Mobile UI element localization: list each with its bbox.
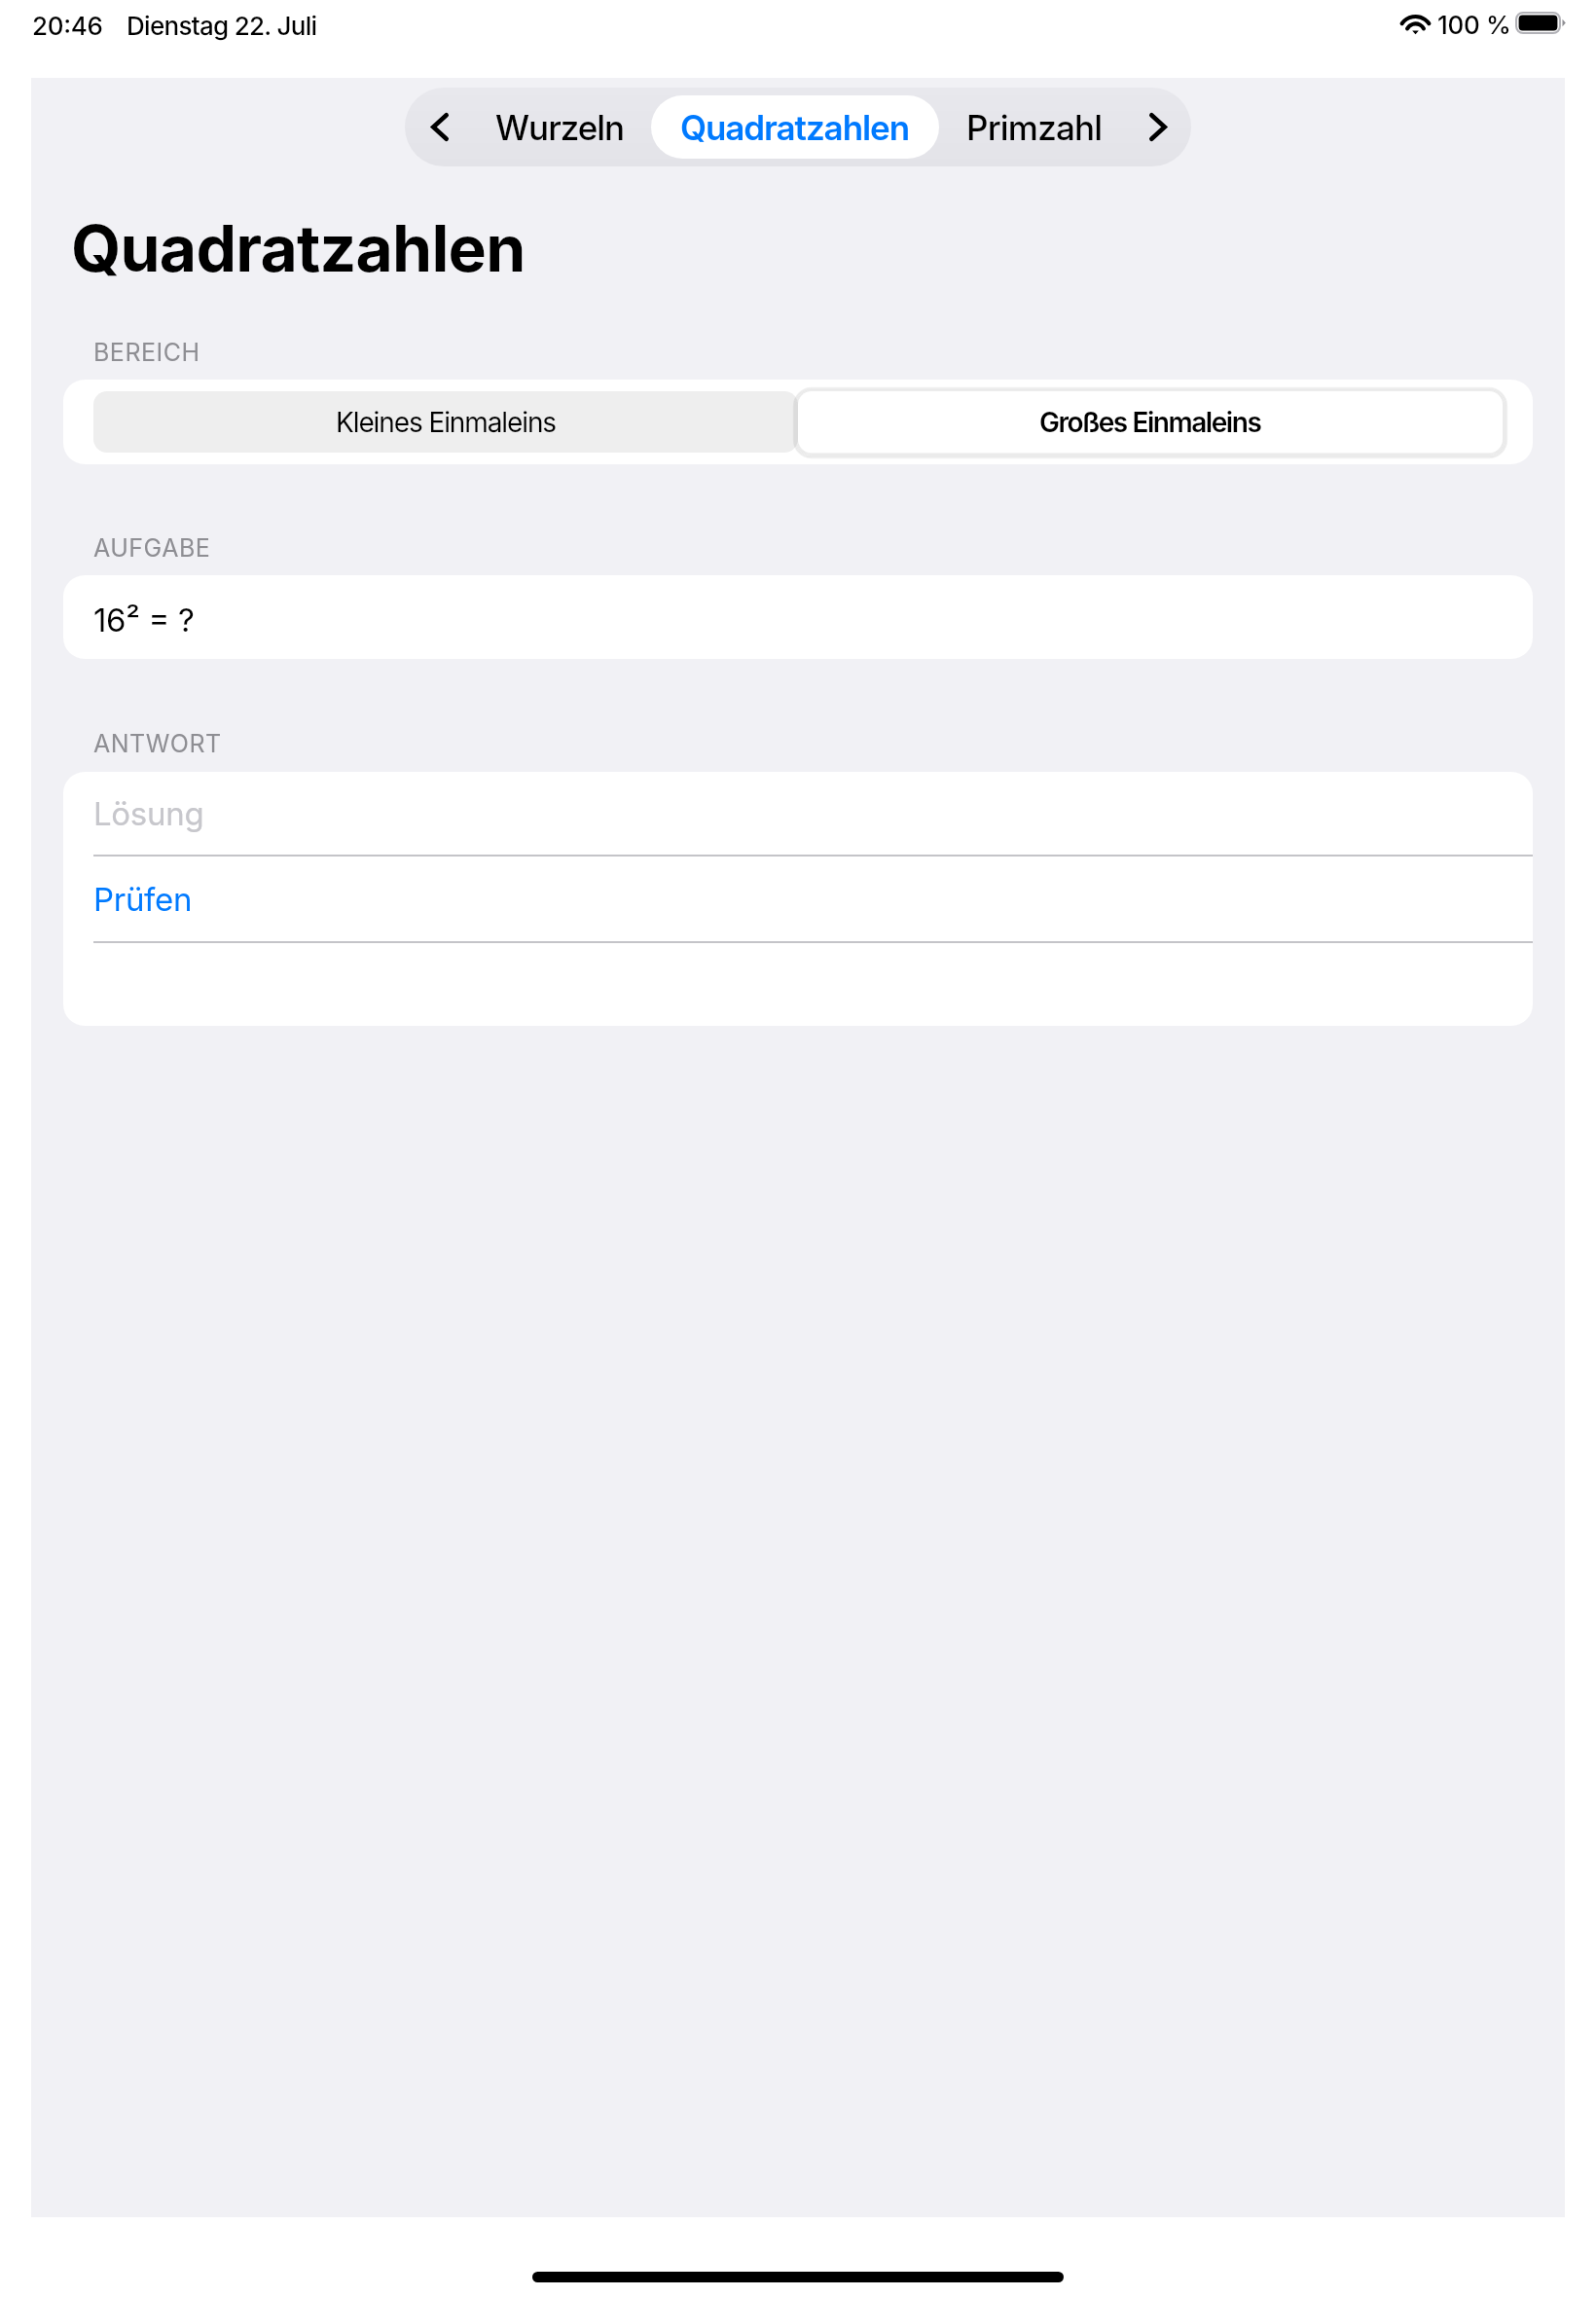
staticText: Großes Einmaleins bbox=[1039, 406, 1261, 439]
staticText: Wurzeln bbox=[495, 107, 625, 148]
staticText: AUFGABE bbox=[93, 533, 211, 563]
staticText: 100 % bbox=[1437, 10, 1511, 40]
button[interactable]: Quadratzahlen bbox=[651, 95, 939, 159]
button[interactable]: Wurzeln bbox=[482, 88, 637, 166]
staticText: BEREICH bbox=[93, 338, 200, 367]
staticText: Quadratzahlen bbox=[680, 107, 910, 148]
button[interactable]: Großes Einmaleins bbox=[798, 391, 1503, 453]
staticText: 16² = ? bbox=[93, 601, 195, 639]
button[interactable]: Prüfen bbox=[93, 857, 1533, 941]
staticText: Prüfen bbox=[93, 880, 193, 919]
staticText: Dienstag 22. Juli bbox=[127, 11, 317, 41]
button[interactable]: Primzahl bbox=[957, 88, 1112, 166]
staticText: Quadratzahlen bbox=[71, 209, 526, 287]
staticText: Primzahl bbox=[966, 107, 1103, 148]
staticText: Kleines Einmaleins bbox=[336, 406, 557, 439]
button[interactable]: Weiter bbox=[1131, 88, 1185, 166]
button[interactable]: Kleines Einmaleins bbox=[93, 391, 798, 453]
button[interactable]: Zurück bbox=[413, 88, 466, 166]
staticText: 20:46 bbox=[32, 11, 103, 41]
staticText: Lösung bbox=[93, 794, 204, 833]
staticText: ANTWORT bbox=[93, 729, 222, 758]
